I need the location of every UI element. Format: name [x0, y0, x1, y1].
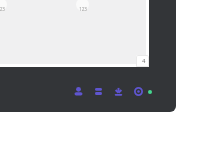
staticText: 123 [79, 6, 87, 12]
button[interactable]: Settings [132, 85, 145, 98]
button[interactable]: Downloads [112, 85, 125, 98]
button[interactable]: 123 [76, 0, 89, 11]
staticText: 123 [0, 6, 5, 12]
button[interactable]: 123 [0, 0, 7, 11]
other: Online [148, 90, 152, 94]
button[interactable]: Library [92, 85, 105, 98]
staticText: 4 [142, 57, 146, 65]
button[interactable]: 4 [136, 55, 149, 67]
button[interactable]: Account [72, 85, 85, 98]
